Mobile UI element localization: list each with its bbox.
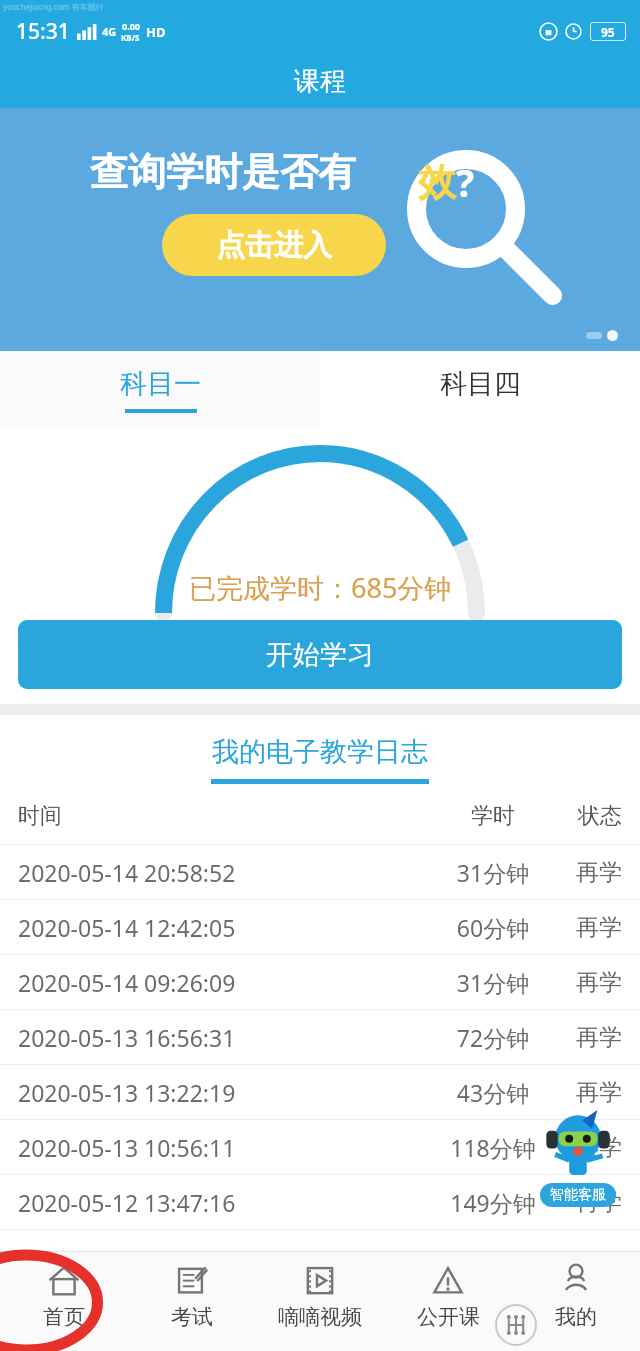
staticText: 31分钟	[438, 857, 548, 888]
staticText: 智能客服	[550, 1186, 606, 1204]
staticText: 再学	[548, 1078, 622, 1107]
staticText: 首页	[43, 1304, 85, 1330]
staticText: youchejuxng.com 有车就行	[3, 1, 104, 12]
staticText: 149分钟	[438, 1187, 548, 1218]
staticText: 31分钟	[438, 967, 548, 998]
button[interactable]: 科目四	[320, 351, 640, 429]
staticText: KB/S	[121, 32, 140, 43]
button[interactable]: 2020-05-13 10:56:11	[0, 1120, 640, 1174]
staticText: 时间	[18, 802, 438, 830]
button[interactable]: 智能客服	[534, 1107, 622, 1207]
staticText: 再学	[548, 913, 622, 942]
staticText: 2020-05-12 13:47:16	[18, 1187, 438, 1218]
staticText: 15:31	[16, 17, 70, 46]
staticText: 再学	[548, 1133, 622, 1162]
button[interactable]: 2020-05-14 12:42:05	[0, 900, 640, 954]
staticText: 学时	[438, 802, 548, 830]
staticText: 点击进入	[216, 227, 332, 264]
staticText: 课程	[294, 65, 346, 98]
staticText: 再学	[548, 1188, 622, 1217]
staticText: 嘀嘀视频	[278, 1304, 362, 1330]
staticText: 72分钟	[438, 1022, 548, 1053]
staticText: 0.00	[122, 20, 140, 32]
staticText: 2020-05-14 20:58:52	[18, 857, 438, 888]
staticText: 2020-05-13 16:56:31	[18, 1022, 438, 1053]
staticText: 2020-05-13 10:56:11	[18, 1132, 438, 1163]
staticText: 公开课	[417, 1304, 480, 1330]
button[interactable]: 2020-05-13 13:22:19	[0, 1065, 640, 1119]
staticText: 再学	[548, 968, 622, 997]
staticText: 科目一	[120, 367, 201, 401]
staticText: 查询学时是否有	[90, 148, 356, 196]
staticText: 已完成学时：685分钟	[189, 569, 452, 606]
button[interactable]: 2020-05-13 16:56:31	[0, 1010, 640, 1064]
button[interactable]: 2020-05-12 13:47:16	[0, 1175, 640, 1229]
staticText: 开始学习	[266, 638, 374, 672]
staticText: 4G	[102, 24, 117, 39]
staticText: 考试	[171, 1304, 213, 1330]
staticText: 2020-05-14 09:26:09	[18, 967, 438, 998]
button[interactable]: 考试	[128, 1252, 256, 1351]
button[interactable]: 2020-05-14 09:26:09	[0, 955, 640, 1009]
button[interactable]: 首页	[0, 1252, 128, 1351]
button[interactable]: 点击进入	[162, 214, 386, 276]
staticText: 再学	[548, 858, 622, 887]
staticText: ?	[456, 156, 475, 208]
staticText: 我的	[555, 1304, 597, 1330]
staticText: 科目四	[440, 367, 521, 401]
button[interactable]: 开始学习	[18, 620, 622, 689]
staticText: 我的电子教学日志	[212, 735, 428, 769]
button[interactable]: 查询学时是否有	[0, 108, 640, 351]
button[interactable]: 科目一	[0, 351, 320, 429]
staticText: 95	[601, 24, 615, 40]
staticText: 再学	[548, 1023, 622, 1052]
staticText: 状态	[548, 802, 622, 830]
button[interactable]: 公开课	[384, 1252, 512, 1351]
staticText: 118分钟	[438, 1132, 548, 1163]
staticText: 2020-05-14 12:42:05	[18, 912, 438, 943]
staticText: HD	[146, 23, 166, 41]
button[interactable]: 嘀嘀视频	[256, 1252, 384, 1351]
staticText: 43分钟	[438, 1077, 548, 1108]
button[interactable]: 2020-05-14 20:58:52	[0, 845, 640, 899]
button[interactable]: 我的	[512, 1252, 640, 1351]
staticText: 60分钟	[438, 912, 548, 943]
staticText: 效	[418, 158, 456, 206]
staticText: 2020-05-13 13:22:19	[18, 1077, 438, 1108]
